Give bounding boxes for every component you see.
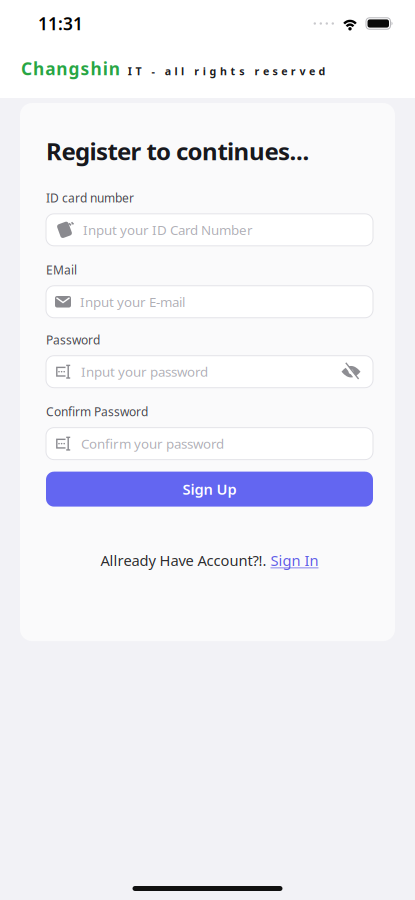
staticText: ID card number	[46, 190, 134, 206]
staticText: Input your ID Card Number	[83, 221, 253, 239]
button[interactable]: Show password	[341, 365, 361, 378]
staticText: 11:31	[38, 12, 83, 35]
staticText: Sign Up	[182, 479, 236, 499]
button[interactable]: Sign Up	[46, 472, 373, 507]
staticText: Input your E-mail	[80, 293, 185, 311]
staticText: Allready Have Account?!.	[100, 551, 266, 570]
staticText: Confirm Password	[46, 404, 148, 420]
staticText: Input your password	[81, 363, 208, 380]
staticText: Confirm your password	[81, 435, 224, 452]
staticText: EMail	[46, 262, 77, 278]
button[interactable]: Sign In	[270, 551, 318, 570]
staticText: IT - all rights reserved	[128, 64, 326, 78]
staticText: Register to continues...	[46, 135, 309, 167]
staticText: Sign In	[270, 551, 318, 570]
staticText: Changshin	[21, 57, 120, 80]
staticText: Password	[46, 332, 100, 348]
